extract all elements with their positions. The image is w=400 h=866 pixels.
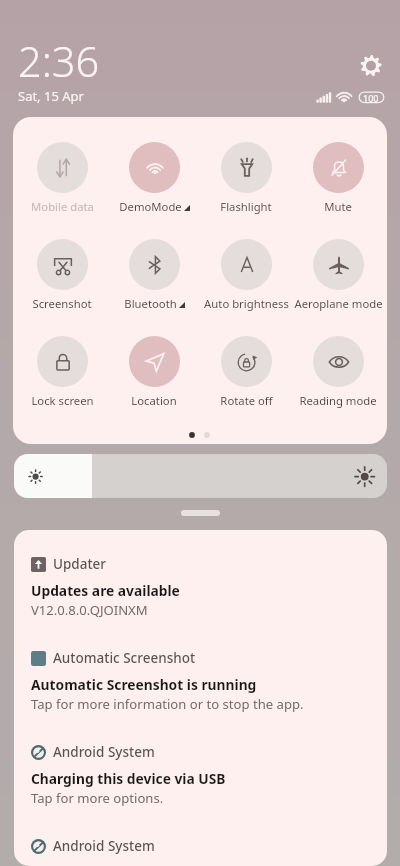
button[interactable]: Expand (181, 510, 220, 516)
staticText: Aeroplane mode (294, 296, 383, 311)
staticText: 100 (363, 92, 379, 104)
staticText: Reading mode (299, 393, 377, 408)
button[interactable]: Updater (14, 555, 387, 619)
staticText: Updater (53, 555, 107, 573)
button[interactable]: Mute (290, 142, 386, 214)
staticText: Location (131, 393, 177, 408)
button[interactable]: DemoMode (106, 142, 202, 214)
staticText: Bluetooth (124, 296, 177, 311)
staticText: Lock screen (31, 393, 94, 408)
button[interactable]: Screenshot (14, 239, 110, 311)
staticText: Automatic Screenshot is running (31, 675, 257, 694)
staticText: Tap for more information or to stop the … (31, 695, 304, 713)
staticText: Mobile data (31, 199, 94, 214)
staticText: V12.0.8.0.QJOINXM (31, 601, 148, 619)
staticText: Android System (53, 743, 155, 761)
button[interactable]: Rotate off (198, 336, 294, 408)
staticText: Auto brightness (204, 296, 289, 311)
button[interactable]: Bluetooth (106, 239, 202, 311)
staticText: 2:36 (18, 33, 100, 90)
button[interactable]: Lock screen (14, 336, 110, 408)
button[interactable]: Automatic Screenshot (14, 649, 387, 713)
button[interactable]: Android System (14, 837, 387, 855)
staticText: Charging this device via USB (31, 769, 226, 788)
staticText: Rotate off (220, 393, 273, 408)
button[interactable]: Flashlight (198, 142, 294, 214)
button[interactable]: Aeroplane mode (290, 239, 386, 311)
staticText: DemoMode (119, 199, 182, 214)
button[interactable]: Mobile data (14, 142, 110, 214)
button[interactable]: Reading mode (290, 336, 386, 408)
staticText: Mute (324, 199, 352, 214)
staticText: Updates are available (31, 581, 180, 600)
button[interactable]: Settings (357, 52, 385, 80)
staticText: Screenshot (32, 296, 92, 311)
button[interactable]: Android System (14, 743, 387, 807)
staticText: Automatic Screenshot (53, 649, 196, 667)
button[interactable]: Location (106, 336, 202, 408)
button[interactable]: Brightness (14, 454, 387, 498)
staticText: Flashlight (220, 199, 272, 214)
staticText: Tap for more options. (31, 789, 164, 807)
staticText: Sat, 15 Apr (18, 87, 84, 105)
staticText: Android System (53, 837, 155, 855)
button[interactable]: Auto brightness (198, 239, 294, 311)
